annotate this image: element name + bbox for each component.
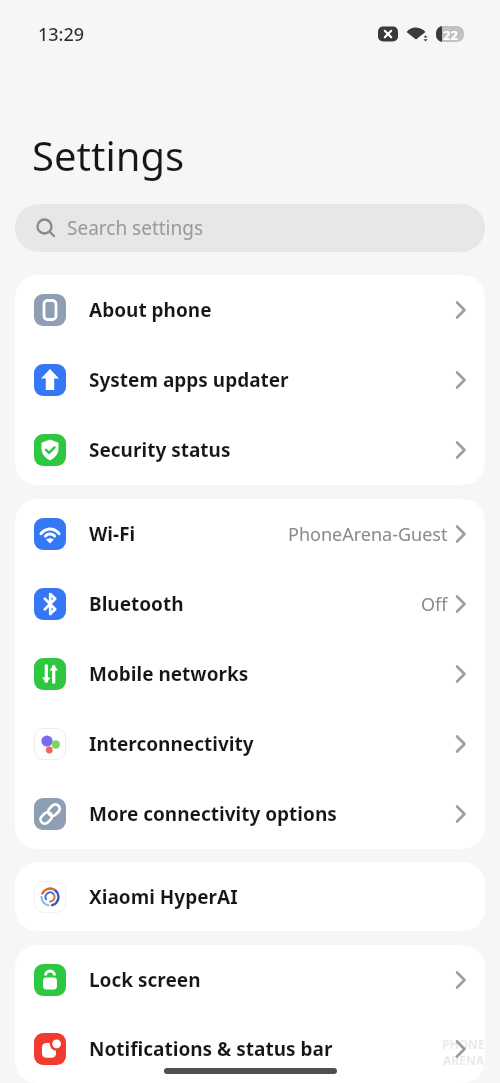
staticText: Mobile networks — [89, 661, 249, 687]
staticText: Search settings — [67, 215, 204, 241]
staticText: System apps updater — [89, 367, 289, 393]
staticText: PhoneArena-Guest — [288, 522, 448, 547]
staticText: Off — [421, 592, 448, 617]
button[interactable]: Lock screen — [15, 945, 485, 1015]
staticText: More connectivity options — [89, 801, 337, 827]
button[interactable]: System apps updater — [15, 345, 485, 415]
staticText: PHONE — [442, 1036, 485, 1052]
staticText: About phone — [89, 297, 212, 323]
button[interactable]: Search settings — [15, 204, 485, 252]
staticText: Bluetooth — [89, 591, 184, 617]
button[interactable]: Wi-Fi — [15, 499, 485, 569]
button[interactable]: Interconnectivity — [15, 709, 485, 779]
button[interactable]: Mobile networks — [15, 639, 485, 709]
button[interactable]: Bluetooth — [15, 569, 485, 639]
button[interactable]: Notifications & status bar — [15, 1015, 485, 1083]
staticText: Notifications & status bar — [89, 1036, 333, 1062]
staticText: Security status — [89, 437, 231, 463]
staticText: Interconnectivity — [89, 731, 254, 757]
staticText: Settings — [32, 128, 185, 182]
staticText: Wi-Fi — [89, 521, 136, 547]
staticText: Lock screen — [89, 967, 201, 993]
button[interactable]: More connectivity options — [15, 779, 485, 849]
staticText: 13:29 — [38, 22, 85, 47]
button[interactable]: Xiaomi HyperAI — [15, 862, 485, 931]
staticText: Xiaomi HyperAI — [89, 884, 238, 910]
button[interactable]: About phone — [15, 275, 485, 345]
staticText: 22 — [443, 26, 458, 42]
button[interactable]: Security status — [15, 415, 485, 485]
staticText: ARENA — [443, 1052, 484, 1068]
